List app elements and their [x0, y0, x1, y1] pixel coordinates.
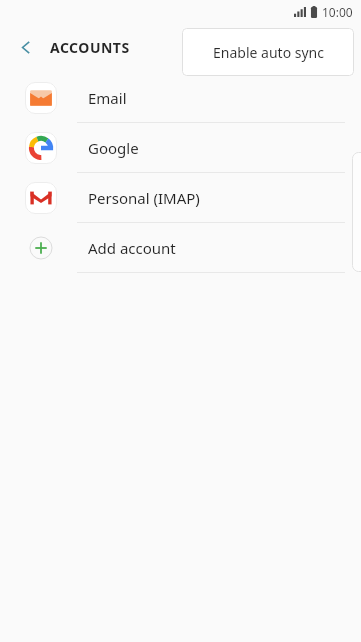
staticText: Personal (IMAP): [88, 188, 200, 208]
staticText: Email: [88, 88, 127, 108]
staticText: Google: [88, 138, 139, 158]
staticText: Enable auto sync: [213, 43, 324, 62]
button[interactable]: Enable auto sync: [182, 28, 354, 76]
button[interactable]: Email: [0, 73, 361, 122]
staticText: Add account: [88, 238, 176, 258]
button[interactable]: Back: [10, 31, 42, 63]
button[interactable]: Add account: [0, 223, 361, 272]
button[interactable]: Google: [0, 123, 361, 172]
staticText: ACCOUNTS: [50, 38, 130, 57]
button[interactable]: Personal (IMAP): [0, 173, 361, 222]
staticText: 10:00: [322, 4, 353, 20]
